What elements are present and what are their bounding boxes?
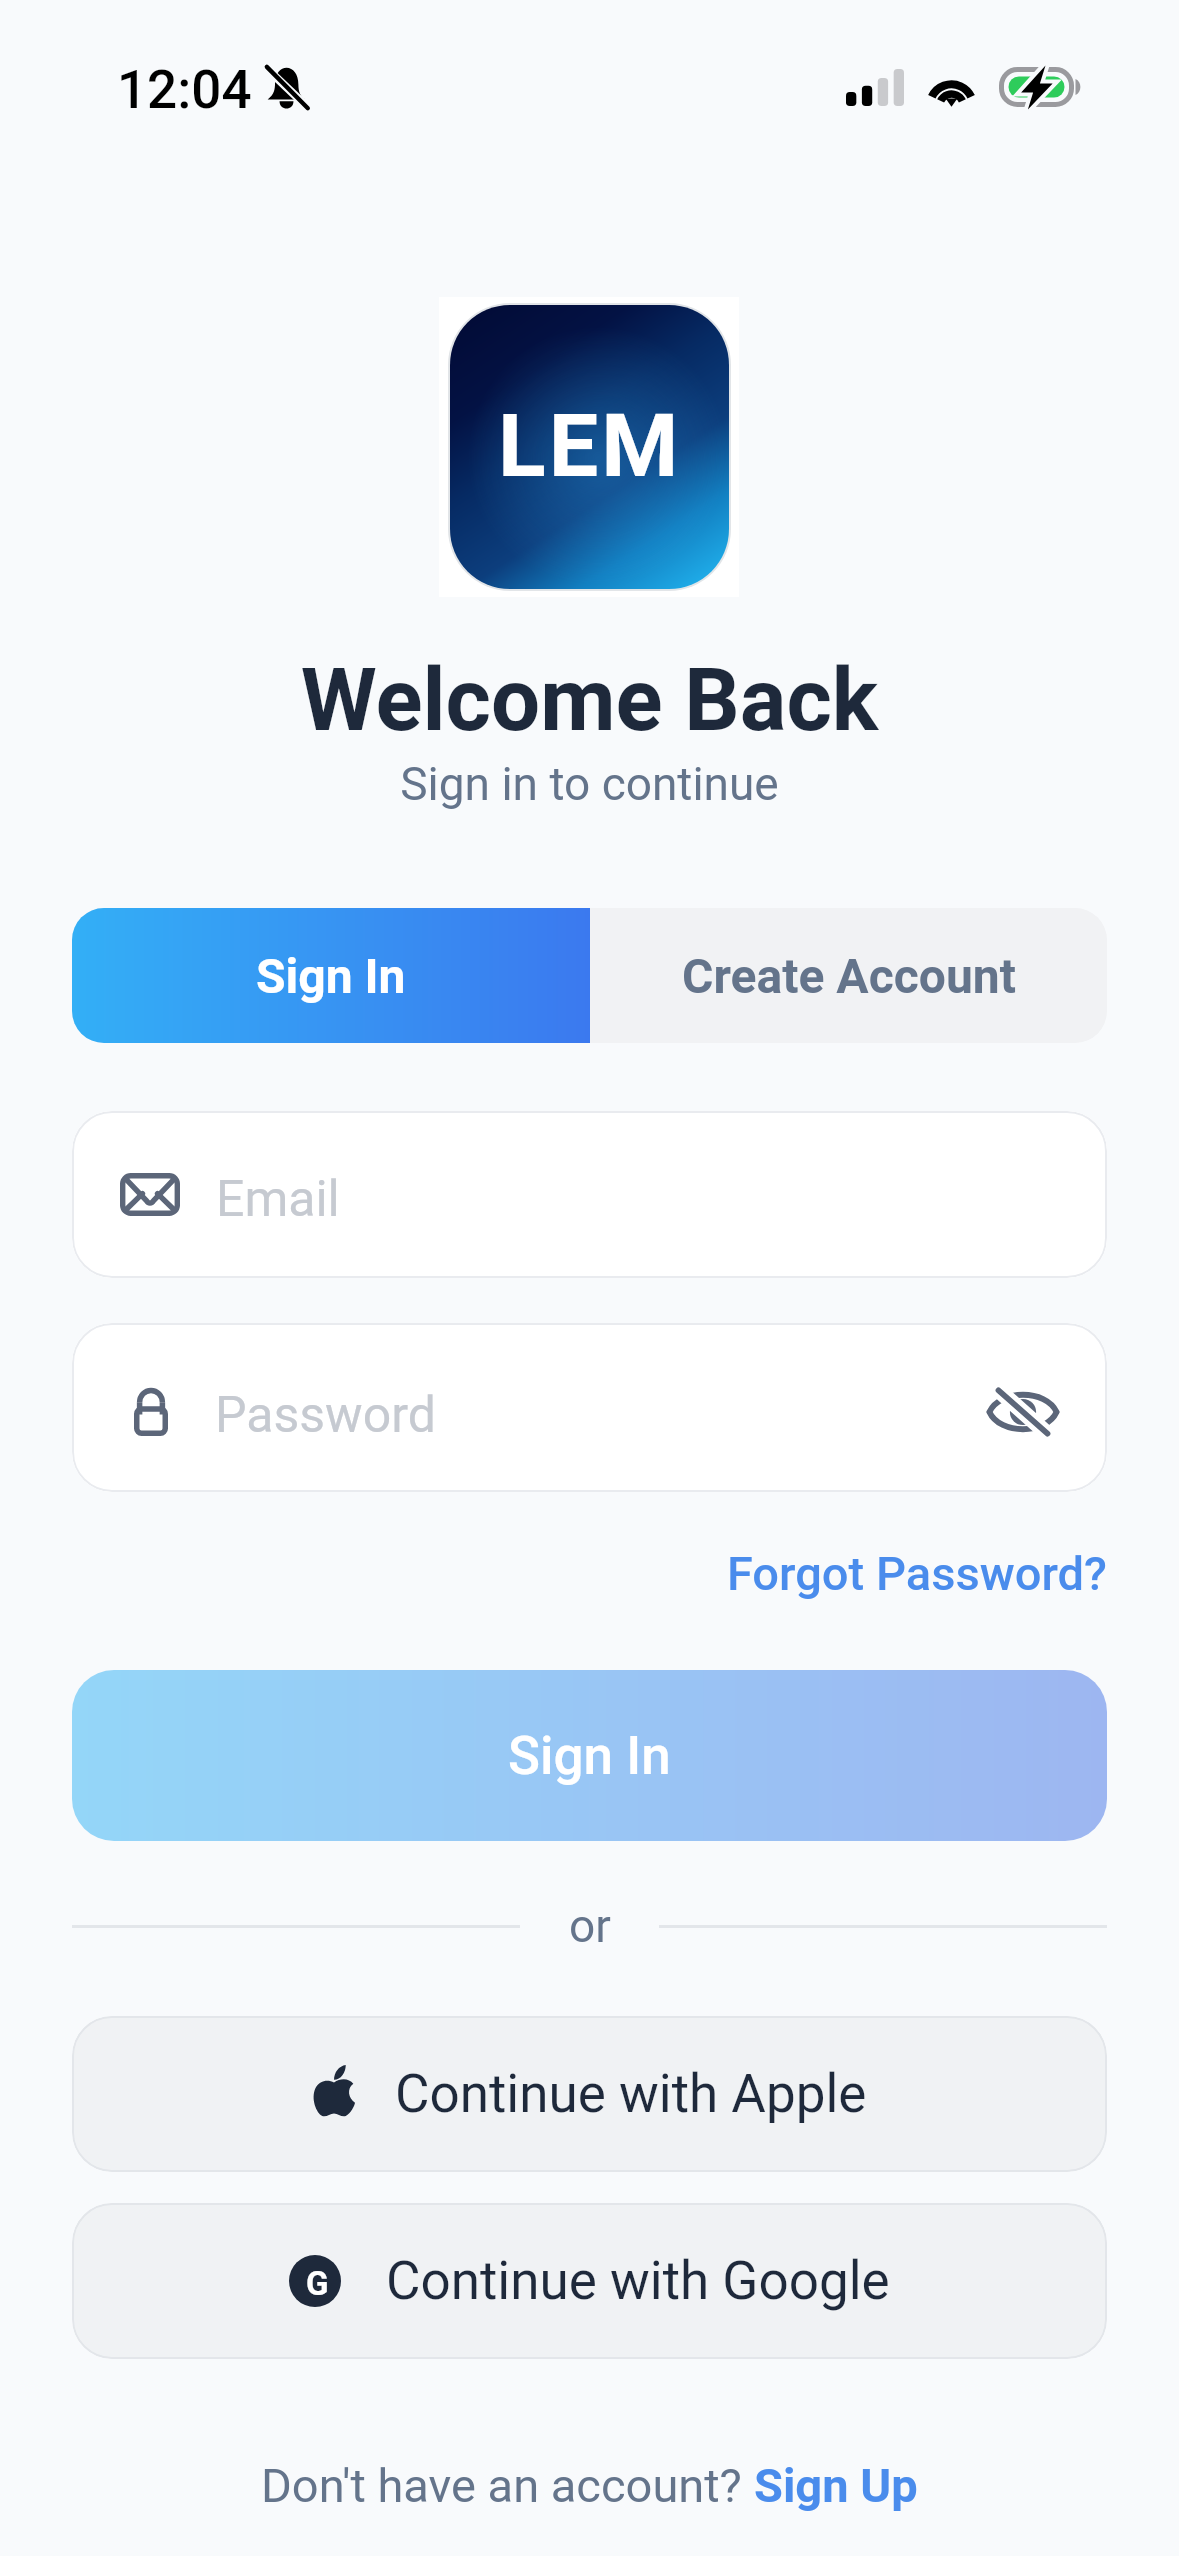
- button[interactable]: Show password: [978, 1358, 1068, 1458]
- button[interactable]: Email: [72, 1111, 1107, 1278]
- button[interactable]: Continue with Apple: [72, 2016, 1107, 2172]
- button[interactable]: Password: [72, 1323, 1107, 1492]
- staticText: Sign In: [256, 948, 406, 1004]
- staticText: Create Account: [682, 948, 1016, 1004]
- staticText: LEM: [498, 394, 682, 497]
- button[interactable]: Forgot Password?: [0, 1546, 1107, 1601]
- staticText: Sign in to continue: [0, 757, 1179, 811]
- button[interactable]: Create Account: [590, 908, 1107, 1043]
- button[interactable]: G: [72, 2203, 1107, 2359]
- staticText: Welcome Back: [0, 649, 1179, 751]
- button[interactable]: Sign Up: [754, 2458, 918, 2513]
- staticText: Email: [216, 1170, 340, 1229]
- staticText: Continue with Google: [386, 2250, 890, 2312]
- button[interactable]: Sign In: [72, 1670, 1107, 1841]
- staticText: or: [569, 1899, 611, 1953]
- staticText: Don't have an account?: [261, 2458, 754, 2513]
- staticText: 12:04: [117, 59, 252, 121]
- staticText: Continue with Apple: [395, 2063, 867, 2125]
- staticText: G: [306, 2264, 329, 2303]
- staticText: Password: [215, 1386, 978, 1445]
- staticText: Sign In: [508, 1725, 671, 1787]
- button[interactable]: Sign In: [72, 908, 590, 1043]
